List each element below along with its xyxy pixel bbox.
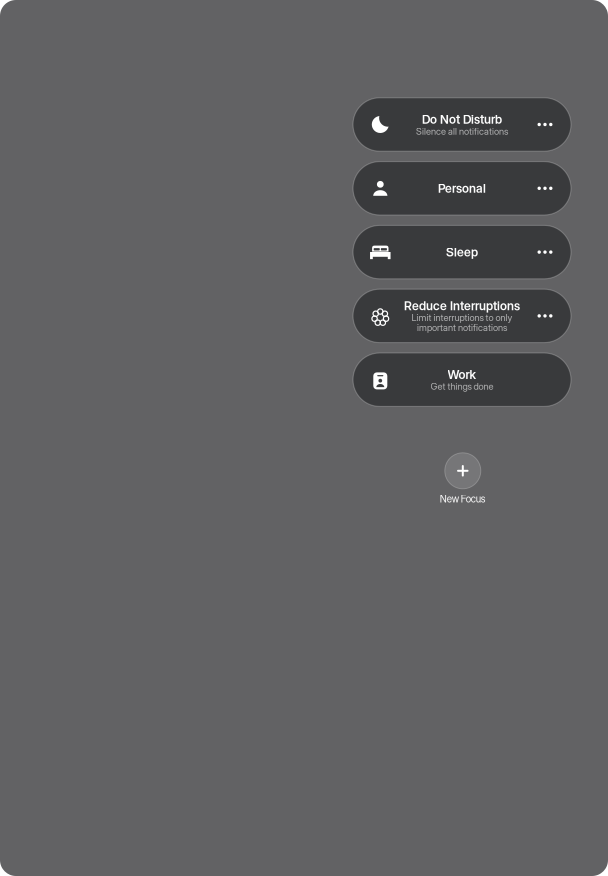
staticText: New Focus	[440, 493, 486, 505]
staticText: Get things done	[430, 381, 493, 392]
button[interactable]: Personal	[353, 162, 571, 215]
button[interactable]: More options for Reduce Interruptions	[532, 303, 558, 329]
staticText: Reduce Interruptions	[404, 298, 520, 313]
button[interactable]: More options for Do Not Disturb	[532, 111, 558, 137]
button[interactable]: Reduce Interruptions	[353, 289, 571, 343]
staticText: Sleep	[446, 245, 478, 259]
button[interactable]: More options for Personal	[532, 175, 558, 201]
staticText: important notifications	[417, 322, 507, 333]
button[interactable]: New Focus	[435, 453, 491, 505]
staticText: Silence all notifications	[416, 126, 508, 137]
button[interactable]: Work	[353, 353, 571, 406]
button[interactable]: Do Not Disturb	[353, 98, 571, 151]
staticText: Do Not Disturb	[422, 112, 502, 127]
staticText: Personal	[438, 181, 486, 196]
button[interactable]: More options for Sleep	[532, 239, 558, 265]
button[interactable]: Sleep	[353, 225, 571, 279]
staticText: Work	[447, 367, 476, 382]
staticText: Limit interruptions to only	[411, 312, 512, 323]
